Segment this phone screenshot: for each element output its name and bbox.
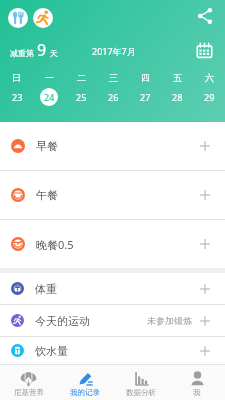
button[interactable]: 我的记录: [57, 365, 113, 400]
staticText: 我: [193, 388, 201, 397]
staticText: 2017年7月: [92, 45, 136, 57]
staticText: 减重第: [10, 48, 34, 58]
button[interactable]: 数据分析: [113, 365, 169, 400]
button[interactable]: 晚餐0.5: [0, 220, 225, 268]
button[interactable]: Share: [194, 5, 216, 27]
button[interactable]: 早餐: [0, 122, 225, 170]
button[interactable]: 尼基营养: [0, 365, 57, 400]
staticText: 天: [50, 48, 58, 58]
staticText: 尼基营养: [14, 388, 44, 397]
staticText: 未参加锻炼: [147, 315, 192, 326]
button[interactable]: 五: [161, 72, 193, 106]
button[interactable]: 我: [169, 365, 225, 400]
staticText: 数据分析: [126, 388, 156, 397]
button[interactable]: 今天的运动: [0, 305, 225, 336]
staticText: 29: [204, 91, 215, 103]
staticText: 四: [141, 72, 150, 83]
button[interactable]: Calendar: [195, 41, 214, 60]
button[interactable]: 六: [193, 72, 225, 106]
staticText: 24: [44, 91, 55, 103]
staticText: 23: [12, 91, 23, 103]
staticText: 27: [140, 91, 151, 103]
button[interactable]: 饮水量: [0, 337, 225, 364]
staticText: 日: [12, 72, 21, 83]
button[interactable]: 四: [129, 72, 161, 106]
staticText: 9: [37, 39, 47, 61]
button[interactable]: 二: [65, 72, 97, 106]
button[interactable]: Diet plan: [8, 8, 28, 28]
staticText: 体重: [35, 282, 57, 296]
staticText: 早餐: [36, 139, 58, 153]
staticText: 28: [172, 91, 183, 103]
button[interactable]: 日: [0, 72, 33, 106]
button[interactable]: 体重: [0, 273, 225, 304]
staticText: 25: [76, 91, 87, 103]
button[interactable]: 一: [33, 72, 65, 106]
staticText: 五: [173, 72, 182, 83]
staticText: 一: [45, 72, 54, 83]
staticText: 26: [108, 91, 119, 103]
staticText: 晚餐0.5: [36, 237, 74, 252]
staticText: 六: [205, 72, 214, 83]
staticText: 二: [77, 72, 86, 83]
button[interactable]: Exercise plan: [33, 8, 53, 28]
staticText: 饮水量: [35, 344, 68, 358]
staticText: 我的记录: [70, 388, 100, 397]
button[interactable]: 午餐: [0, 171, 225, 219]
button[interactable]: 三: [97, 72, 129, 106]
staticText: 三: [109, 72, 118, 83]
staticText: 午餐: [36, 188, 58, 202]
staticText: 今天的运动: [35, 314, 90, 328]
